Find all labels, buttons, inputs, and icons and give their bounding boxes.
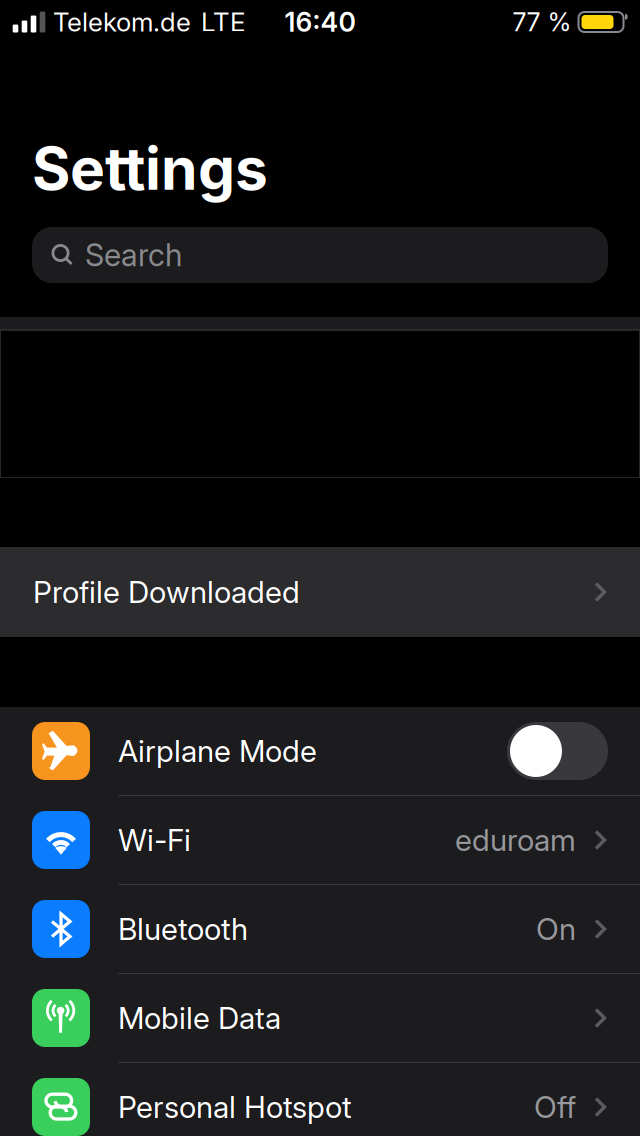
staticText: Search	[85, 236, 182, 273]
button[interactable]: Airplane Mode	[0, 707, 640, 795]
staticText: Profile Downloaded	[33, 574, 300, 610]
staticText: LTE	[201, 6, 245, 38]
button[interactable]: Wi-Fi	[0, 796, 640, 884]
staticText: Mobile Data	[118, 1000, 281, 1036]
button[interactable]: Bluetooth	[0, 885, 640, 973]
staticText: Telekom.de	[53, 6, 191, 38]
button[interactable]: Personal Hotspot	[0, 1063, 640, 1136]
staticText: Personal Hotspot	[118, 1089, 352, 1125]
staticText: Off	[534, 1089, 576, 1125]
staticText: Airplane Mode	[118, 733, 317, 769]
button[interactable]: Profile Downloaded	[0, 547, 640, 637]
button[interactable]: Search	[32, 227, 608, 283]
staticText: Bluetooth	[118, 911, 248, 947]
staticText: 77 %	[512, 7, 571, 37]
staticText: 16:40	[284, 6, 355, 38]
staticText: eduroam	[455, 822, 576, 858]
button[interactable]: Mobile Data	[0, 974, 640, 1062]
staticText: Settings	[32, 133, 268, 204]
staticText: On	[536, 911, 576, 947]
staticText: Wi-Fi	[118, 822, 191, 858]
